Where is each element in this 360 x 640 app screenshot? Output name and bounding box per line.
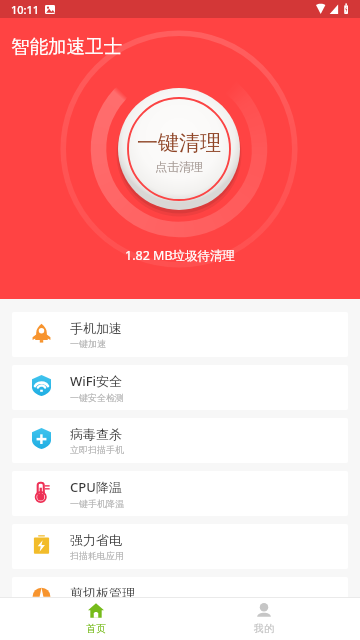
staticText: WiFi安全 — [70, 372, 123, 390]
staticText: 首页 — [86, 622, 106, 635]
staticText: 扫描耗电应用 — [70, 550, 124, 561]
button[interactable]: 病毒查杀 — [12, 418, 348, 463]
staticText: 立即扫描手机 — [70, 444, 124, 455]
staticText: 10:11 — [11, 2, 40, 17]
button[interactable]: 强力省电 — [12, 524, 348, 569]
staticText: 一键加速 — [70, 338, 106, 349]
staticText: 我的 — [254, 622, 274, 635]
staticText: 病毒查杀 — [70, 426, 122, 442]
staticText: 一键清理 — [137, 130, 221, 156]
staticText: CPU降温 — [70, 478, 122, 496]
staticText: 智能加速卫士 — [11, 35, 122, 58]
staticText: 点击清理 — [155, 159, 203, 174]
button[interactable]: 我的 — [222, 598, 306, 640]
button[interactable]: WiFi安全 — [12, 365, 348, 410]
button[interactable]: 剪切板管理 — [12, 577, 348, 622]
button[interactable] — [118, 88, 240, 210]
staticText: 手机加速 — [70, 320, 122, 336]
staticText: 一键安全检测 — [70, 392, 124, 403]
button[interactable]: 首页 — [54, 598, 138, 640]
staticText: 清理剪切板 — [70, 603, 115, 614]
staticText: 剪切板管理 — [70, 585, 135, 601]
button[interactable]: CPU降温 — [12, 471, 348, 516]
button[interactable]: 手机加速 — [12, 312, 348, 357]
staticText: 一键手机降温 — [70, 498, 124, 509]
staticText: 1.82 MB垃圾待清理 — [0, 247, 360, 264]
staticText: 强力省电 — [70, 532, 122, 548]
